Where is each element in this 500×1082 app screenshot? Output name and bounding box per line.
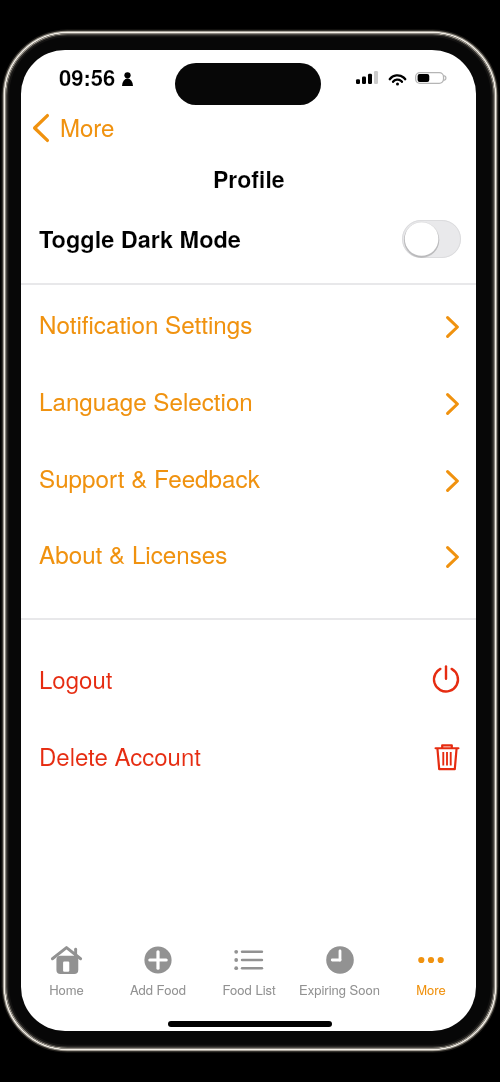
- staticText: About & Licenses: [39, 536, 228, 571]
- staticText: Add Food: [130, 980, 186, 999]
- button[interactable]: Language Selection: [21, 362, 476, 439]
- staticText: More: [416, 980, 446, 999]
- button[interactable]: Expiring Soon: [294, 937, 385, 1007]
- button[interactable]: About & Licenses: [21, 515, 476, 592]
- staticText: Profile: [213, 162, 285, 195]
- button[interactable]: More: [385, 937, 476, 1007]
- other: Delete Account: [435, 741, 459, 768]
- staticText: More: [60, 109, 115, 143]
- staticText: Logout: [39, 661, 113, 695]
- button[interactable]: Support & Feedback: [21, 439, 476, 516]
- button[interactable]: Delete Account: [21, 716, 476, 793]
- staticText: Notification Settings: [39, 306, 253, 341]
- staticText: 09:56: [59, 61, 116, 93]
- staticText: Delete Account: [39, 738, 201, 772]
- button[interactable]: More: [21, 107, 127, 149]
- staticText: Toggle Dark Mode: [39, 222, 241, 256]
- button[interactable]: Food List: [203, 937, 294, 1007]
- staticText: Home: [49, 980, 84, 999]
- staticText: Support & Feedback: [39, 460, 260, 495]
- button[interactable]: Toggle Dark Mode: [21, 211, 476, 267]
- staticText: Language Selection: [39, 383, 253, 418]
- other: Logout: [433, 665, 459, 691]
- staticText: Food List: [222, 980, 276, 999]
- button[interactable]: Logout: [21, 639, 476, 716]
- button[interactable]: Notification Settings: [21, 285, 476, 362]
- staticText: Expiring Soon: [299, 980, 380, 999]
- button[interactable]: Add Food: [112, 937, 203, 1007]
- button[interactable]: Home: [21, 937, 112, 1007]
